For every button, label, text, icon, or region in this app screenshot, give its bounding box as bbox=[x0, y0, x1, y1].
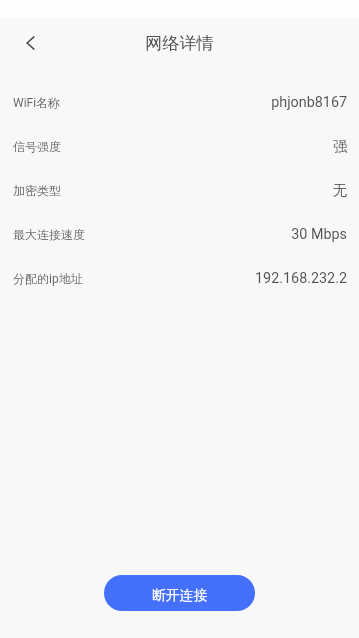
staticText: 断开连接 bbox=[152, 587, 208, 604]
button[interactable]: 最大连接速度 bbox=[0, 212, 359, 256]
button[interactable]: 加密类型 bbox=[0, 168, 359, 212]
button[interactable]: 分配的ip地址 bbox=[0, 256, 359, 300]
staticText: 网络详情 bbox=[145, 32, 214, 54]
staticText: 30 Mbps bbox=[291, 226, 347, 243]
button[interactable]: Back bbox=[9, 21, 53, 65]
button[interactable]: WiFi名称 bbox=[0, 80, 359, 124]
staticText: phjonb8167 bbox=[271, 94, 347, 111]
staticText: WiFi名称 bbox=[13, 95, 61, 110]
staticText: 强 bbox=[332, 137, 347, 155]
staticText: 192.168.232.2 bbox=[255, 270, 347, 287]
button[interactable]: 信号强度 bbox=[0, 124, 359, 168]
staticText: 信号强度 bbox=[13, 139, 61, 154]
staticText: 分配的ip地址 bbox=[13, 271, 83, 286]
button[interactable]: 断开连接 bbox=[104, 575, 255, 611]
staticText: 最大连接速度 bbox=[13, 227, 85, 242]
staticText: 无 bbox=[332, 181, 347, 199]
staticText: 加密类型 bbox=[13, 183, 61, 198]
